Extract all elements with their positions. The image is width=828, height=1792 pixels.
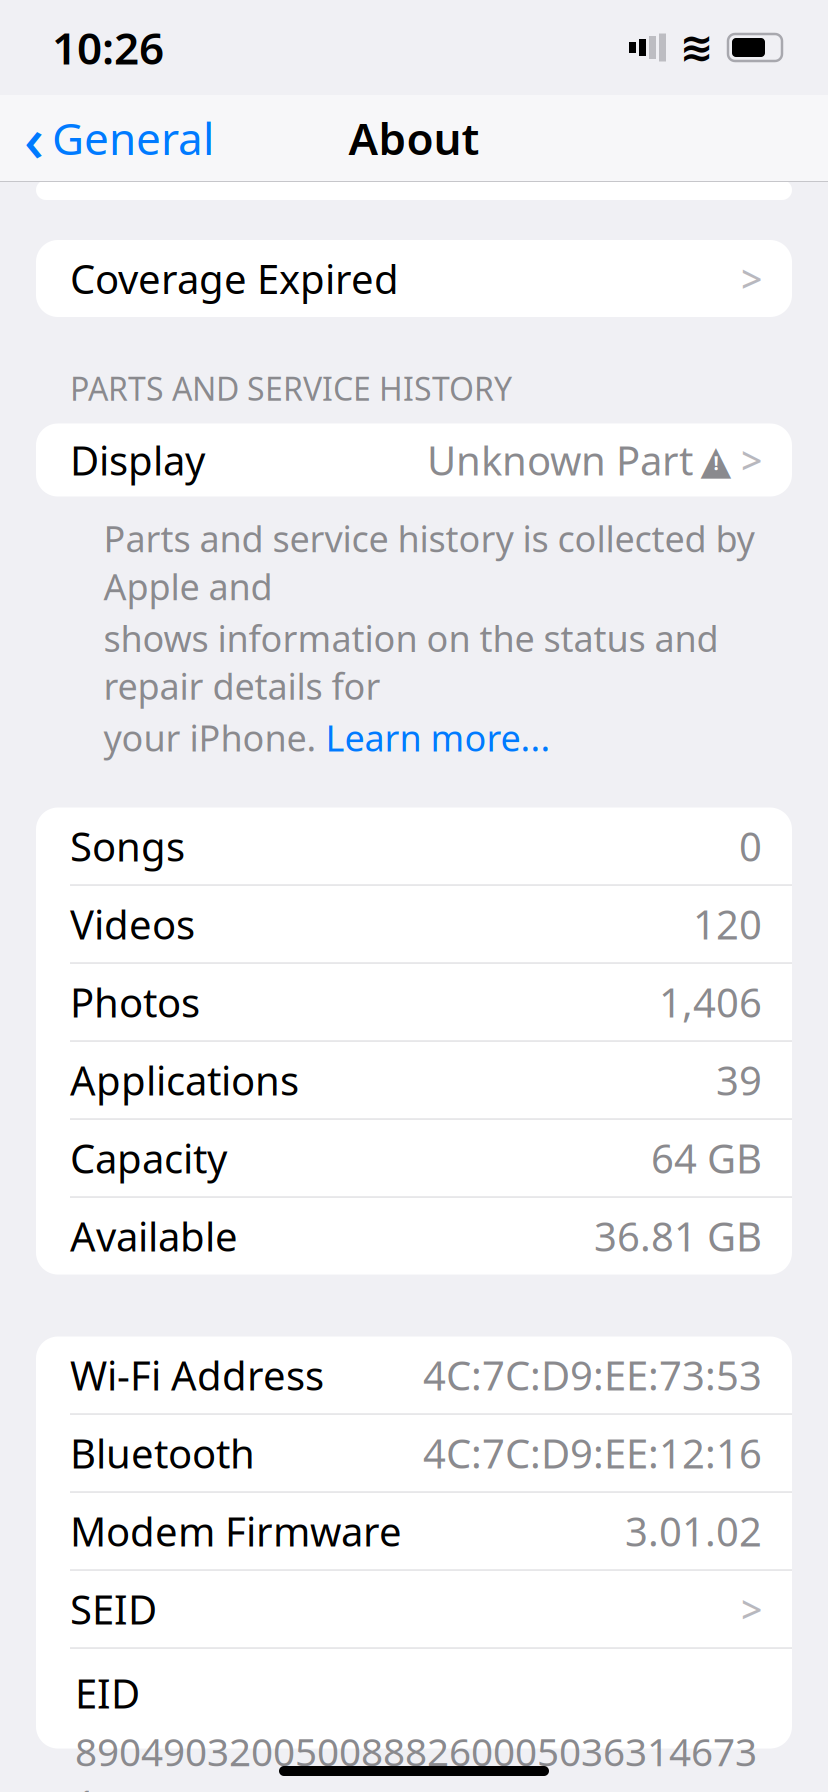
staticText: 3.01.02 — [625, 1504, 762, 1558]
staticText: 89049032005008882600050363146731 — [75, 1726, 757, 1792]
staticText: ▲ — [700, 437, 731, 483]
staticText: your iPhone. — [103, 714, 325, 761]
button[interactable]: SEID — [36, 1570, 792, 1647]
staticText: Unknown Part — [427, 433, 693, 486]
staticText: Coverage Expired — [70, 252, 399, 305]
button[interactable]: ‹ — [0, 95, 226, 181]
staticText: Applications — [70, 1053, 299, 1107]
staticText: Available — [70, 1209, 238, 1263]
staticText: Videos — [70, 897, 195, 951]
staticText: 120 — [693, 897, 762, 951]
staticText: Songs — [70, 819, 185, 873]
staticText: > — [741, 254, 762, 303]
staticText: 0 — [739, 819, 762, 873]
staticText: EID — [75, 1666, 140, 1720]
staticText: SEID — [70, 1582, 157, 1636]
staticText: Modem Firmware — [70, 1504, 402, 1558]
staticText: Display — [70, 433, 205, 486]
staticText: Capacity — [70, 1131, 227, 1185]
staticText: 4C:7C:D9:EE:12:16 — [423, 1426, 762, 1480]
button[interactable]: Learn more... — [325, 714, 550, 761]
staticText: ‹ — [24, 97, 44, 179]
staticText: 39 — [716, 1053, 762, 1107]
staticText: Learn more... — [325, 714, 550, 761]
staticText: shows information on the status and repa… — [103, 614, 718, 710]
staticText: 10:26 — [52, 18, 164, 77]
staticText: PARTS AND SERVICE HISTORY — [70, 367, 512, 409]
staticText: ≋ — [680, 25, 714, 70]
staticText: Parts and service history is collected b… — [103, 514, 754, 610]
staticText: Bluetooth — [70, 1426, 255, 1480]
staticText: General — [52, 109, 214, 167]
staticText: 64 GB — [651, 1131, 762, 1185]
staticText: Wi-Fi Address — [70, 1348, 324, 1402]
button[interactable]: Coverage Expired — [36, 240, 792, 317]
staticText: 1,406 — [659, 975, 762, 1029]
staticText: 36.81 GB — [594, 1209, 762, 1263]
staticText: About — [348, 109, 479, 167]
staticText: Photos — [70, 975, 200, 1029]
staticText: > — [741, 435, 762, 485]
staticText: ! — [713, 451, 718, 475]
button[interactable]: Display — [36, 423, 792, 496]
staticText: 4C:7C:D9:EE:73:53 — [423, 1348, 762, 1402]
staticText: > — [741, 1584, 762, 1634]
